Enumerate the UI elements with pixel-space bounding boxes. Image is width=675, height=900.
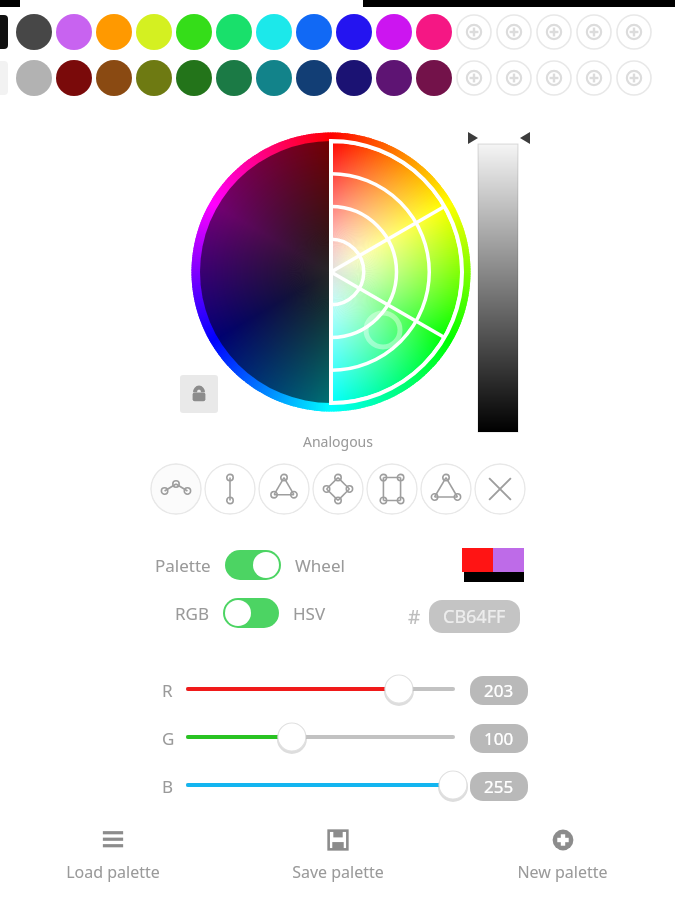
- button[interactable]: Load palette: [0, 815, 225, 900]
- button[interactable]: Triad: [258, 463, 310, 515]
- button[interactable]: Add color: [496, 60, 532, 96]
- staticText: RGB: [175, 602, 209, 625]
- button[interactable]: New palette: [450, 815, 675, 900]
- button[interactable]: Add color: [616, 60, 652, 96]
- staticText: B: [162, 775, 174, 798]
- button[interactable]: Analogous: [150, 463, 202, 515]
- button[interactable]: Swatch: [16, 60, 52, 96]
- button[interactable]: Swatch: [296, 14, 332, 50]
- button[interactable]: Swatch: [376, 14, 412, 50]
- button[interactable]: Add color: [536, 14, 572, 50]
- button[interactable]: Palette: [155, 550, 345, 580]
- button[interactable]: Swatch: [416, 14, 452, 50]
- button[interactable]: Swatch: [336, 60, 372, 96]
- button[interactable]: Swatch: [96, 14, 132, 50]
- button[interactable]: B slider: [188, 768, 675, 802]
- button[interactable]: Swatch: [96, 60, 132, 96]
- button[interactable]: [0, 15, 8, 49]
- button[interactable]: Add color: [616, 14, 652, 50]
- staticText: Save palette: [292, 861, 384, 883]
- button[interactable]: Swatch: [216, 14, 252, 50]
- staticText: 100: [484, 727, 514, 750]
- staticText: Wheel: [295, 554, 345, 577]
- button[interactable]: RGB: [175, 598, 326, 628]
- button[interactable]: Swatch: [176, 60, 212, 96]
- button[interactable]: R slider: [188, 672, 675, 706]
- button[interactable]: Save palette: [225, 815, 450, 900]
- button[interactable]: Swatch: [216, 60, 252, 96]
- button[interactable]: Swatch: [16, 14, 52, 50]
- staticText: G: [162, 727, 175, 750]
- button[interactable]: Add color: [576, 14, 612, 50]
- button[interactable]: Add color: [456, 60, 492, 96]
- staticText: HSV: [293, 602, 326, 625]
- staticText: Analogous: [303, 432, 373, 451]
- button[interactable]: Current color: [462, 548, 524, 582]
- staticText: #: [408, 604, 421, 630]
- staticText: 203: [484, 679, 514, 702]
- button[interactable]: None: [474, 463, 526, 515]
- button[interactable]: Swatch: [336, 14, 372, 50]
- button[interactable]: Swatch: [256, 60, 292, 96]
- button[interactable]: Swatch: [296, 60, 332, 96]
- button[interactable]: Add color: [456, 14, 492, 50]
- staticText: 255: [484, 775, 514, 798]
- button[interactable]: Swatch: [136, 14, 172, 50]
- staticText: CB64FF: [443, 604, 506, 629]
- button[interactable]: Swatch: [136, 60, 172, 96]
- button[interactable]: G slider: [188, 720, 675, 754]
- button[interactable]: Rectangle: [366, 463, 418, 515]
- button[interactable]: Lock: [180, 375, 218, 413]
- button[interactable]: #: [408, 600, 520, 633]
- staticText: New palette: [517, 861, 608, 883]
- button[interactable]: Swatch: [416, 60, 452, 96]
- button[interactable]: Split complementary: [420, 463, 472, 515]
- button[interactable]: Swatch: [56, 14, 92, 50]
- staticText: Load palette: [66, 861, 160, 883]
- button[interactable]: Swatch: [376, 60, 412, 96]
- button[interactable]: Swatch: [56, 60, 92, 96]
- button[interactable]: Complementary: [204, 463, 256, 515]
- button[interactable]: Swatch: [176, 14, 212, 50]
- button[interactable]: Add color: [496, 14, 532, 50]
- button[interactable]: Square: [312, 463, 364, 515]
- staticText: R: [162, 679, 173, 702]
- button[interactable]: Swatch: [256, 14, 292, 50]
- button[interactable]: Add color: [536, 60, 572, 96]
- button[interactable]: Add color: [576, 60, 612, 96]
- staticText: Palette: [155, 554, 211, 577]
